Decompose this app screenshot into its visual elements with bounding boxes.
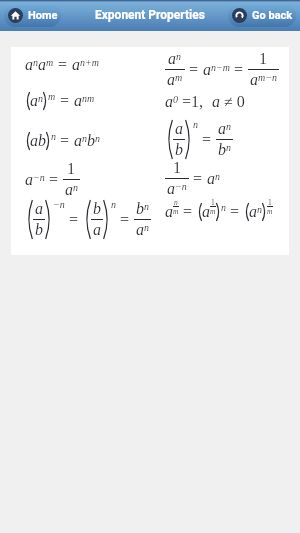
staticText: a <box>175 120 183 138</box>
staticText: a <box>212 93 220 111</box>
staticText: m <box>48 91 56 102</box>
staticText: nm <box>82 93 95 104</box>
staticText: = <box>179 203 197 221</box>
staticText: −n <box>33 172 45 183</box>
staticText: Home <box>28 9 58 22</box>
staticText: b <box>136 200 144 218</box>
staticText: = <box>226 203 244 221</box>
staticText: b <box>35 221 43 239</box>
staticText: a <box>249 203 257 221</box>
staticText: m <box>46 57 54 68</box>
staticText: a <box>165 203 173 221</box>
staticText: n <box>176 51 181 62</box>
staticText: m <box>173 207 179 215</box>
staticText: = <box>65 211 83 229</box>
staticText: n+m <box>80 57 99 68</box>
staticText: n <box>221 202 226 213</box>
staticText: m−n <box>258 72 277 83</box>
staticText: a <box>74 132 82 150</box>
staticText: n <box>51 131 56 142</box>
staticText: −n <box>175 181 187 192</box>
staticText: ≠ 0 <box>220 93 245 111</box>
staticText: = <box>185 61 203 79</box>
staticText: n <box>95 133 100 144</box>
staticText: m <box>210 207 216 215</box>
staticText: a <box>72 56 80 74</box>
staticText: = <box>45 171 63 189</box>
staticText: = <box>230 61 248 79</box>
staticText: m <box>267 207 273 215</box>
staticText: a <box>250 71 258 89</box>
staticText: = <box>56 92 74 110</box>
staticText: a <box>30 92 38 110</box>
staticText: Go back <box>252 9 293 22</box>
staticText: a <box>203 61 211 79</box>
staticText: n <box>33 57 38 68</box>
staticText: = <box>54 56 72 74</box>
staticText: n <box>73 182 78 193</box>
staticText: n <box>257 204 262 215</box>
staticText: a <box>207 170 215 188</box>
staticText: = <box>198 131 216 149</box>
staticText: = <box>56 132 74 150</box>
staticText: n <box>144 201 149 212</box>
staticText: n <box>226 121 231 132</box>
staticText: =1, <box>178 93 212 111</box>
staticText: b <box>87 132 95 150</box>
staticText: a <box>167 71 175 89</box>
staticText: n <box>144 222 149 233</box>
staticText: a <box>136 221 144 239</box>
staticText: −n <box>53 199 65 210</box>
staticText: a <box>25 56 33 74</box>
staticText: Exponent Properties <box>95 8 205 22</box>
staticText: a <box>38 56 46 74</box>
staticText: 1 <box>211 198 215 206</box>
staticText: 1 <box>173 159 181 177</box>
staticText: 1 <box>259 50 267 68</box>
staticText: b <box>218 141 226 159</box>
staticText: n−m <box>211 62 230 73</box>
staticText: ab <box>30 132 46 150</box>
staticText: n <box>226 142 231 153</box>
staticText: n <box>174 198 178 206</box>
staticText: n <box>193 119 198 130</box>
staticText: a <box>202 203 210 221</box>
staticText: a <box>25 171 33 189</box>
staticText: a <box>74 92 82 110</box>
staticText: a <box>35 200 43 218</box>
staticText: a <box>165 93 173 111</box>
staticText: m <box>175 72 183 83</box>
staticText: a <box>218 120 226 138</box>
staticText: 0 <box>173 94 178 105</box>
staticText: n <box>215 171 220 182</box>
staticText: n <box>38 93 43 104</box>
staticText: 1 <box>268 198 272 206</box>
staticText: = <box>116 211 134 229</box>
staticText: 1 <box>67 160 75 178</box>
button[interactable]: Home <box>4 4 61 27</box>
button[interactable]: Go back <box>228 4 296 27</box>
staticText: a <box>168 50 176 68</box>
staticText: b <box>175 141 183 159</box>
staticText: n <box>82 133 87 144</box>
staticText: a <box>167 180 175 198</box>
staticText: n <box>111 199 116 210</box>
staticText: = <box>189 170 207 188</box>
staticText: a <box>65 181 73 199</box>
staticText: b <box>93 200 101 218</box>
staticText: a <box>93 221 101 239</box>
